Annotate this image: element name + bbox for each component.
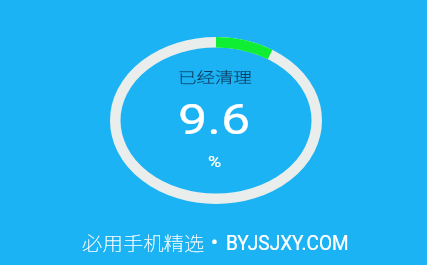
staticText: 已经清理 xyxy=(178,65,253,87)
staticText: BYJSJXY.COM xyxy=(226,230,349,255)
staticText: 必用手机精选 xyxy=(82,227,205,256)
staticText: • xyxy=(211,231,218,253)
staticText: % xyxy=(208,153,222,170)
button[interactable]: Clean junk files xyxy=(110,37,322,204)
staticText: 9.6 xyxy=(178,95,251,144)
